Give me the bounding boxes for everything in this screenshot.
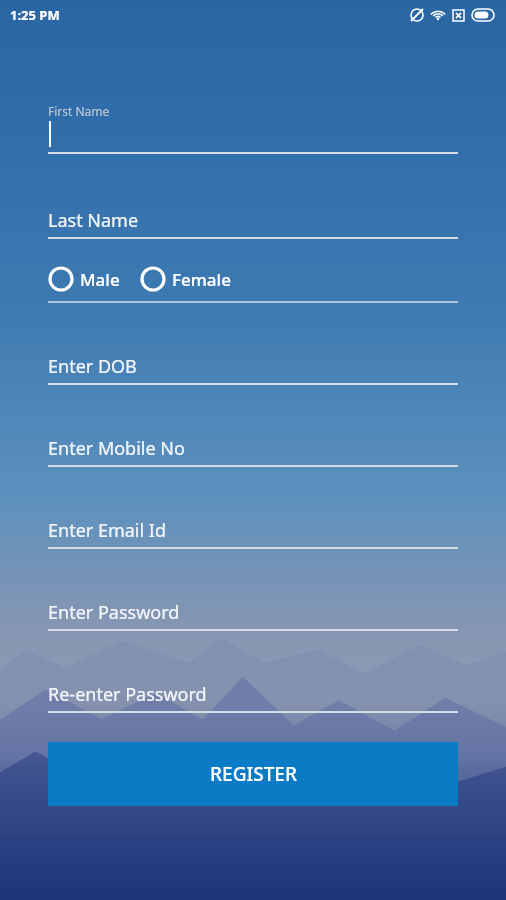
button[interactable]: Enter DOB bbox=[48, 347, 458, 385]
button[interactable]: REGISTER bbox=[48, 742, 458, 806]
staticText: Enter Email Id bbox=[48, 518, 166, 543]
button[interactable]: Last Name bbox=[48, 201, 458, 239]
button[interactable]: Enter Email Id bbox=[48, 511, 458, 549]
staticText: Enter Password bbox=[48, 600, 180, 625]
staticText: Last Name bbox=[48, 208, 139, 233]
staticText: Male bbox=[80, 268, 120, 291]
staticText: Female bbox=[172, 268, 231, 291]
button[interactable]: Female bbox=[140, 266, 235, 292]
staticText: 1:25 PM bbox=[10, 6, 60, 24]
staticText: First Name bbox=[48, 103, 110, 119]
button[interactable]: Re-enter Password bbox=[48, 675, 458, 713]
staticText: REGISTER bbox=[210, 761, 297, 787]
staticText: Re-enter Password bbox=[48, 682, 207, 707]
button[interactable]: Enter Mobile No bbox=[48, 429, 458, 467]
button[interactable]: Male bbox=[48, 266, 124, 292]
button[interactable]: Enter Password bbox=[48, 593, 458, 631]
staticText: Enter DOB bbox=[48, 354, 137, 379]
button[interactable]: First Name bbox=[48, 103, 458, 154]
staticText: Enter Mobile No bbox=[48, 436, 185, 461]
